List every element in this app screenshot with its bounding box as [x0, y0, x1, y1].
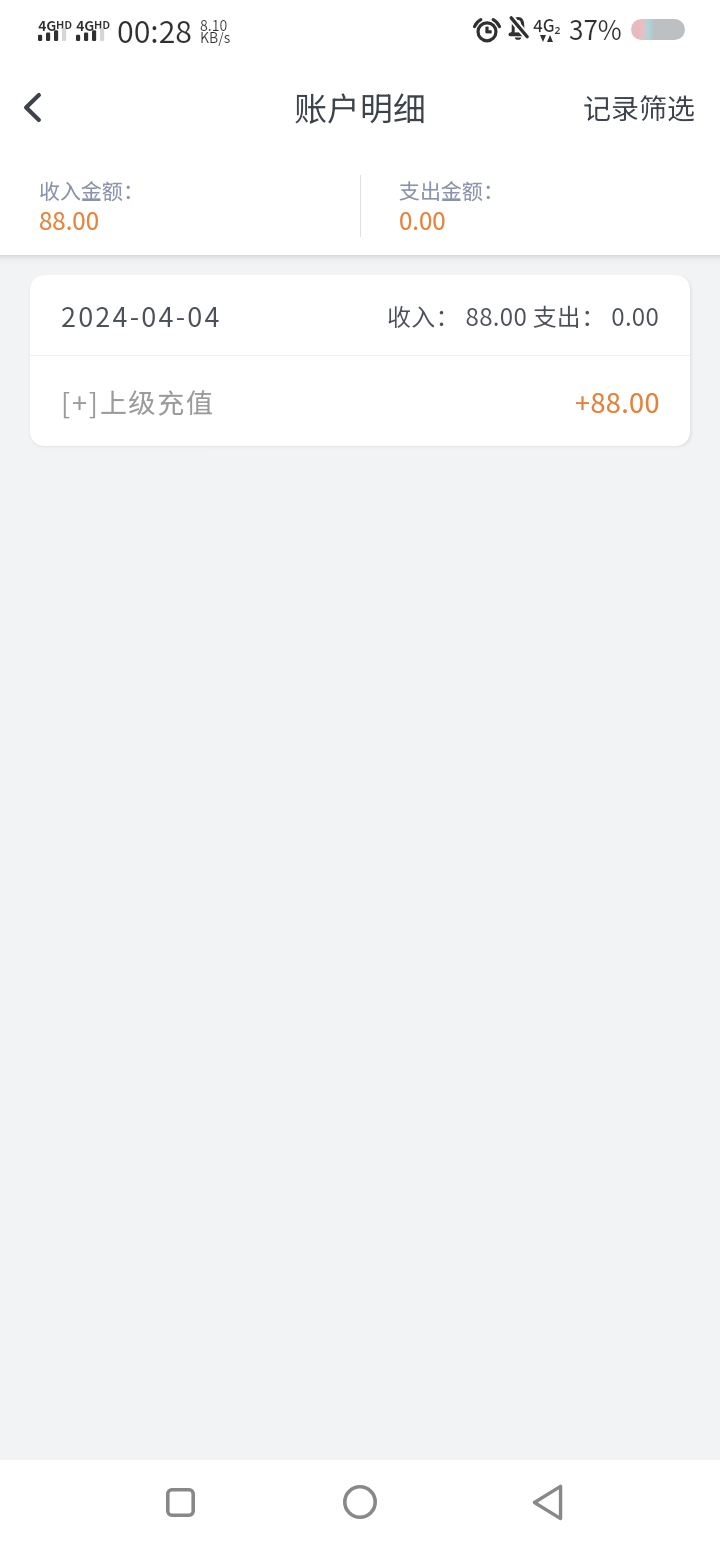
button[interactable]: Back — [502, 1460, 592, 1544]
button[interactable]: Back — [0, 58, 64, 156]
staticText: 88.00 — [39, 202, 99, 237]
staticText: HD — [94, 16, 111, 32]
staticText: 4G₂ — [533, 12, 561, 37]
staticText: HD — [56, 16, 73, 32]
staticText: +88.00 — [575, 382, 660, 421]
staticText: 8.10 — [200, 15, 228, 35]
button[interactable]: [+]上级充值 — [30, 356, 690, 446]
staticText: 记录筛选 — [583, 87, 696, 128]
staticText: 4G — [38, 15, 57, 35]
staticText: 收入： 88.00 支出： 0.00 — [387, 298, 660, 333]
staticText: 支出金额： — [399, 175, 504, 205]
staticText: 2024-04-04 — [61, 296, 222, 335]
staticText: 00:28 — [117, 8, 192, 51]
staticText: KB/s — [200, 27, 231, 47]
staticText: 0.00 — [399, 202, 446, 237]
staticText: 收入金额： — [39, 175, 144, 205]
staticText: 37% — [569, 10, 622, 48]
button[interactable]: Home — [315, 1460, 405, 1544]
button[interactable]: Recent apps — [135, 1460, 225, 1544]
button[interactable]: 2024-04-04 — [30, 275, 690, 355]
button[interactable]: 记录筛选 — [559, 69, 720, 146]
staticText: [+]上级充值 — [61, 382, 215, 421]
staticText: 账户明细 — [294, 83, 426, 131]
staticText: 4G — [76, 15, 95, 35]
